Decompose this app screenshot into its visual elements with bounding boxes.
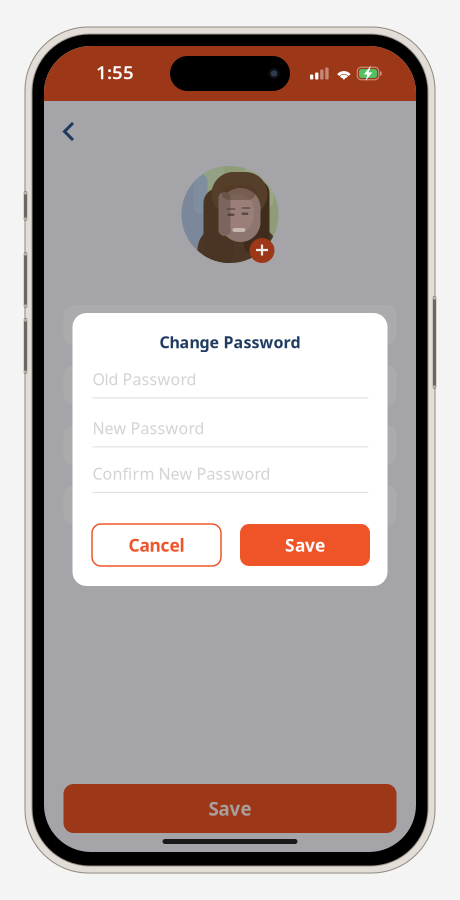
staticText: Old Password <box>92 368 196 390</box>
staticText: Save <box>208 796 251 821</box>
button[interactable]: Save <box>63 784 396 833</box>
staticText: Save <box>285 533 325 556</box>
staticText: 1:55 <box>96 60 134 84</box>
staticText: New Password <box>92 417 204 439</box>
button[interactable]: Cancel <box>92 524 221 566</box>
staticText: Cancel <box>128 533 184 556</box>
staticText: Change Password <box>159 331 300 353</box>
staticText: Confirm New Password <box>92 463 270 484</box>
button[interactable]: Back <box>51 111 87 153</box>
button[interactable]: Save <box>240 524 370 566</box>
